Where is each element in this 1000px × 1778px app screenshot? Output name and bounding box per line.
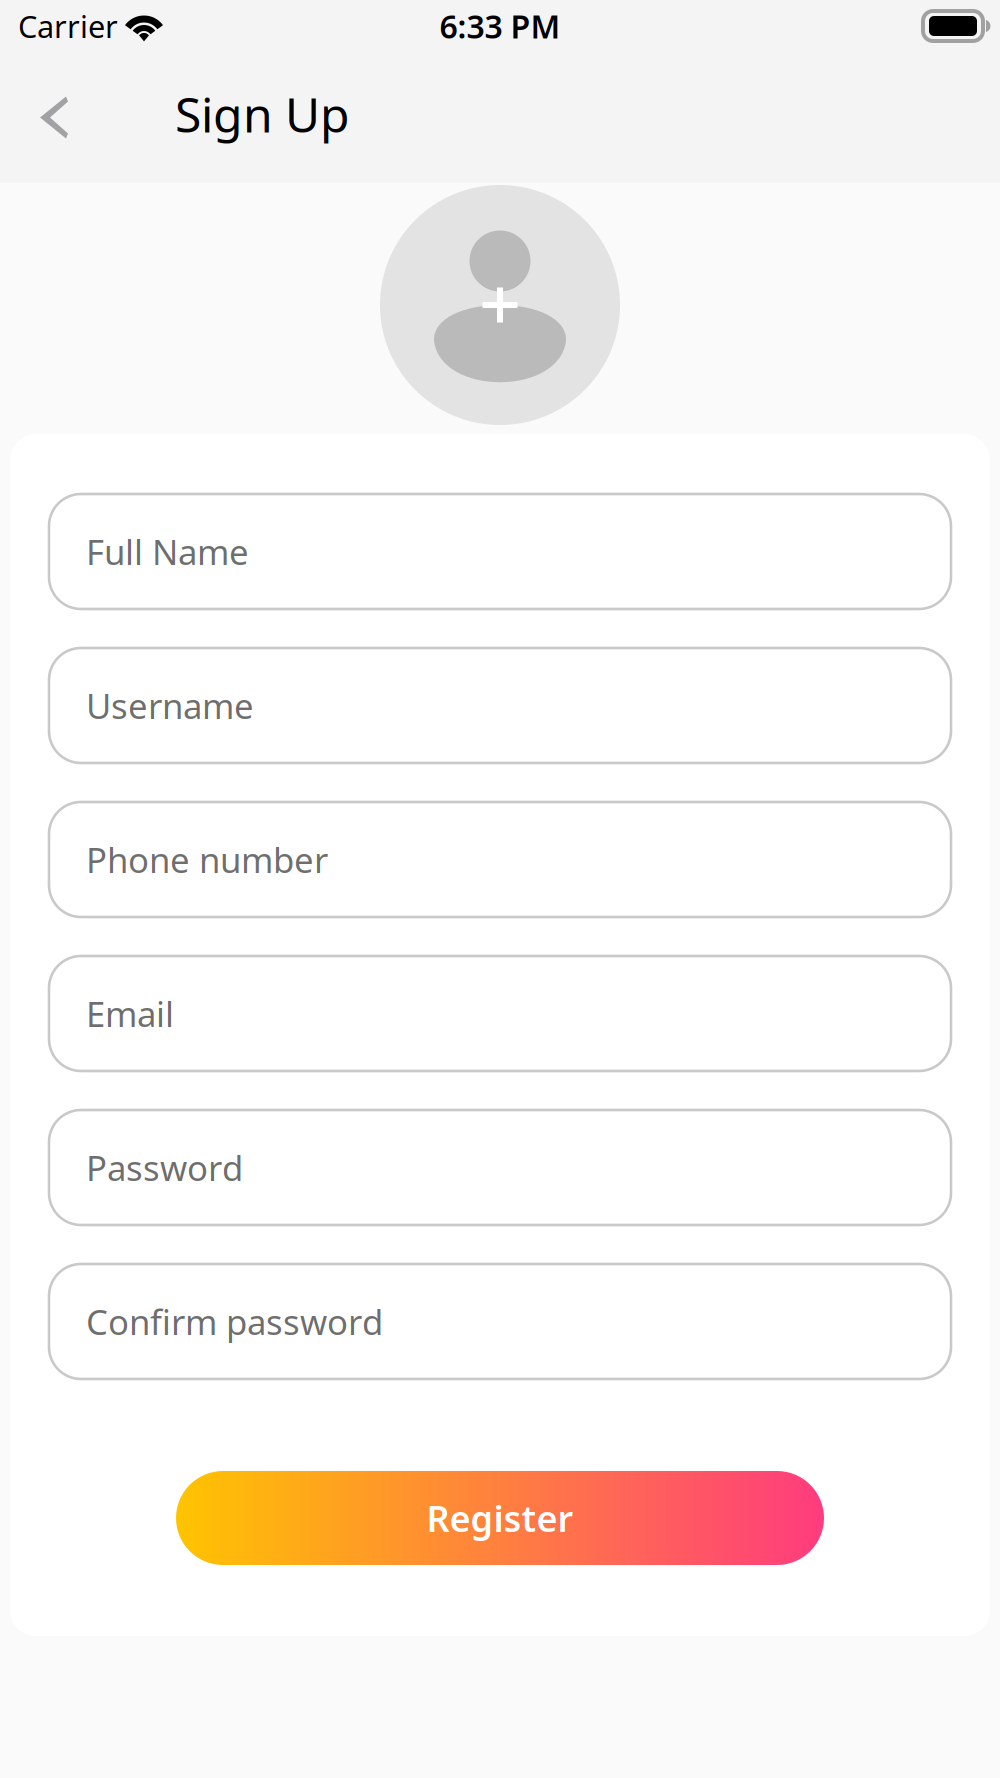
button[interactable]: Username <box>49 648 951 763</box>
button[interactable]: Email <box>49 956 951 1071</box>
staticText: Carrier <box>18 6 118 46</box>
button[interactable]: Confirm password <box>49 1264 951 1379</box>
staticText: Sign Up <box>175 82 350 146</box>
staticText: Password <box>86 1144 243 1190</box>
button[interactable]: Back <box>0 66 175 183</box>
button[interactable]: Register <box>176 1471 824 1565</box>
staticText: Confirm password <box>86 1298 383 1344</box>
button[interactable]: Add profile photo <box>380 185 620 425</box>
staticText: Email <box>86 990 174 1036</box>
button[interactable]: Phone number <box>49 802 951 917</box>
staticText: 6:33 PM <box>439 5 560 47</box>
button[interactable]: Password <box>49 1110 951 1225</box>
staticText: Username <box>86 682 254 728</box>
staticText: Full Name <box>86 528 249 574</box>
staticText: Register <box>426 1494 573 1542</box>
button[interactable]: Full Name <box>49 494 951 609</box>
staticText: Phone number <box>86 836 328 882</box>
